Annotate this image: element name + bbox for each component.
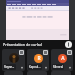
staticText: Royne... <box>4 65 15 69</box>
button[interactable]: Pin participant <box>67 50 72 55</box>
button[interactable]: Pin participant <box>2 49 25 71</box>
button[interactable]: Microphone <box>4 71 23 75</box>
staticText: R <box>37 55 41 62</box>
button[interactable]: Pin participant <box>43 50 48 55</box>
button[interactable]: Microphone status <box>20 66 24 70</box>
button[interactable]: More options <box>65 41 72 48</box>
button[interactable]: Pin participant <box>19 50 24 55</box>
button[interactable]: Microphone status <box>68 66 72 70</box>
button[interactable]: Shared screen <box>0 0 75 40</box>
button[interactable]: Camera <box>27 71 47 75</box>
button[interactable]: End call <box>51 71 71 75</box>
staticText: Présentation de curlsd <box>3 42 42 47</box>
button[interactable]: A <box>51 49 73 71</box>
button[interactable]: Microphone status <box>44 66 48 70</box>
staticText: A <box>61 55 65 62</box>
staticText: Kapoul... <box>29 65 41 69</box>
button[interactable]: R <box>27 49 49 71</box>
staticText: Mineral <box>53 65 63 69</box>
